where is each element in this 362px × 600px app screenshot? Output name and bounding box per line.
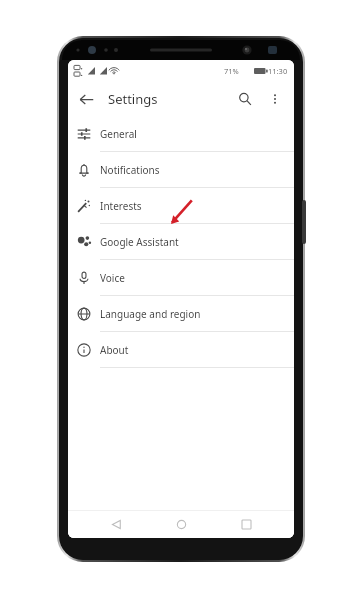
button[interactable]: Home — [168, 511, 194, 537]
button[interactable]: More options — [261, 85, 289, 113]
button[interactable]: Back — [103, 511, 129, 537]
staticText: About — [100, 343, 129, 357]
button[interactable]: Search — [231, 85, 259, 113]
staticText: Notifications — [100, 163, 160, 177]
button[interactable]: Language and region — [68, 296, 294, 331]
button[interactable]: Notifications — [68, 152, 294, 187]
button[interactable]: Interests — [68, 188, 294, 223]
staticText: Settings — [108, 90, 158, 108]
button[interactable]: About — [68, 332, 294, 367]
staticText: Language and region — [100, 307, 201, 321]
button[interactable]: Voice — [68, 260, 294, 295]
button[interactable]: Google Assistant — [68, 224, 294, 259]
staticText: Google Assistant — [100, 235, 179, 249]
staticText: General — [100, 127, 137, 141]
staticText: Interests — [100, 199, 142, 213]
staticText: 11:30 — [268, 66, 288, 76]
staticText: Voice — [100, 271, 125, 285]
staticText: 71% — [224, 66, 239, 76]
button[interactable]: General — [68, 116, 294, 151]
button[interactable]: Recents — [233, 511, 259, 537]
button[interactable]: Back — [72, 85, 100, 113]
